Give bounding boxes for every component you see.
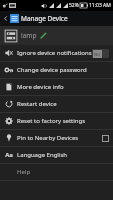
button[interactable]: Ignore device notifications bbox=[0, 45, 113, 61]
staticText: Manage Device bbox=[21, 14, 68, 23]
staticText: More device info bbox=[17, 83, 64, 91]
staticText: lamp bbox=[21, 31, 37, 40]
button[interactable]: Aa bbox=[0, 147, 113, 163]
button[interactable]: Reset to factory settings bbox=[0, 113, 113, 129]
staticText: Language English bbox=[17, 151, 68, 159]
button[interactable]: Change device password bbox=[0, 62, 113, 78]
button[interactable]: Rename device bbox=[39, 31, 48, 40]
staticText: Reset to factory settings bbox=[17, 117, 86, 125]
button[interactable]: More device info bbox=[0, 79, 113, 95]
staticText: Help bbox=[17, 168, 31, 176]
button[interactable]: Help bbox=[0, 164, 113, 180]
button[interactable]: Pin to Nearby Devices bbox=[0, 130, 113, 146]
staticText: 52% bbox=[69, 2, 79, 9]
button[interactable]: Ignore device notifications toggle bbox=[92, 49, 109, 58]
staticText: Ignore device notifications bbox=[17, 49, 92, 57]
staticText: Change device password bbox=[17, 66, 87, 74]
staticText: NO bbox=[94, 52, 101, 57]
button[interactable]: Pin to Nearby Devices checkbox bbox=[102, 135, 109, 142]
staticText: Restart device bbox=[17, 100, 57, 108]
button[interactable]: Restart device bbox=[0, 96, 113, 112]
staticText: Pin to Nearby Devices bbox=[17, 134, 79, 142]
staticText: Aa bbox=[5, 151, 13, 159]
button[interactable]: Back bbox=[2, 11, 9, 26]
staticText: 11:03 AM bbox=[89, 2, 111, 9]
